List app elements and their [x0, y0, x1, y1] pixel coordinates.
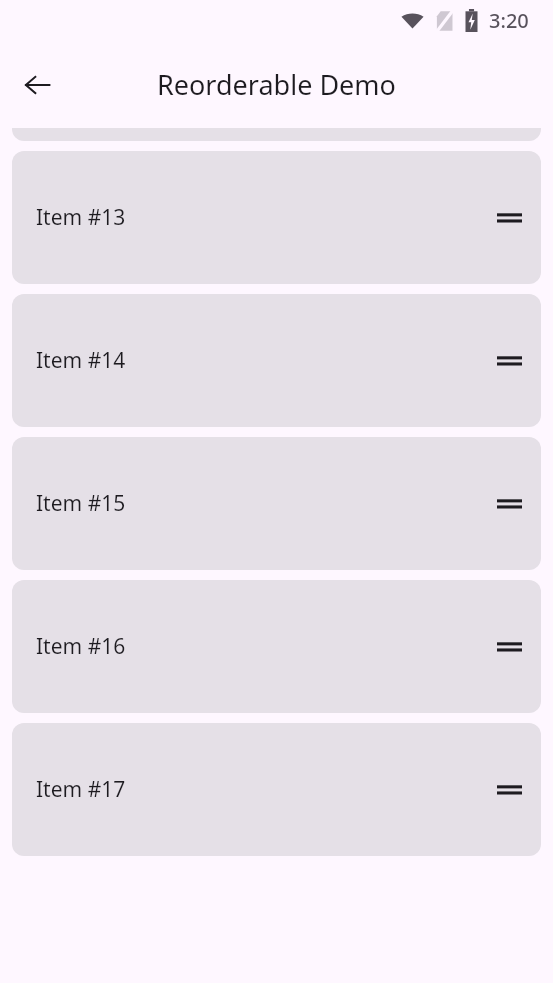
staticText: Item #14 — [36, 346, 126, 375]
other: Drag handle — [497, 495, 522, 513]
staticText: Item #17 — [36, 775, 126, 804]
staticText: 3:20 — [489, 7, 529, 34]
button[interactable]: Item #13 — [12, 151, 541, 284]
staticText: Item #15 — [36, 489, 126, 518]
button[interactable]: Item #14 — [12, 294, 541, 427]
staticText: Item #16 — [36, 632, 126, 661]
other: Drag handle — [497, 352, 522, 370]
staticText: Reorderable Demo — [157, 66, 396, 103]
button[interactable]: Item #15 — [12, 437, 541, 570]
other: Drag handle — [497, 638, 522, 656]
button[interactable]: Item #17 — [12, 723, 541, 856]
button[interactable]: Item #16 — [12, 580, 541, 713]
other: Drag handle — [497, 781, 522, 799]
other: Drag handle — [497, 209, 522, 227]
staticText: Item #13 — [36, 203, 126, 232]
button[interactable]: Back — [12, 59, 63, 110]
